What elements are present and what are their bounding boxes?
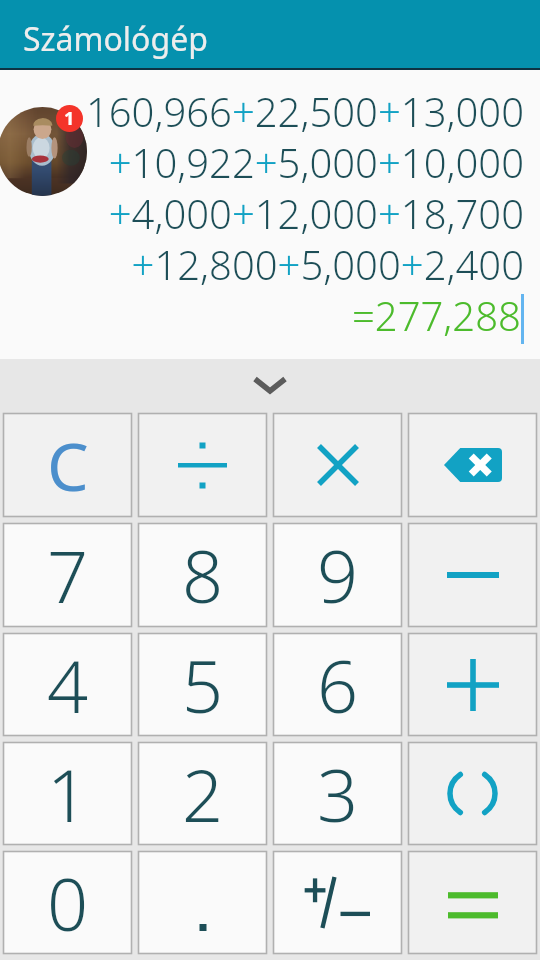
other: 6: [317, 636, 359, 734]
staticText: 8: [182, 526, 224, 624]
other: Minus: [447, 570, 499, 580]
staticText: +4,000+12,000+18,700: [108, 186, 524, 237]
other: Plus: [447, 659, 499, 711]
staticText: 1: [64, 106, 75, 131]
button[interactable]: Multiply: [273, 413, 402, 517]
staticText: 1: [47, 745, 89, 843]
button[interactable]: 1 notification: [56, 105, 83, 132]
staticText: C: [47, 420, 89, 510]
button[interactable]: Decimal point: [138, 851, 267, 954]
staticText: 2: [182, 745, 224, 843]
staticText: +10,922+5,000+10,000: [108, 135, 524, 186]
button[interactable]: Profile photo: [0, 107, 87, 196]
other: Divide: [178, 441, 227, 489]
other: 5: [182, 636, 224, 734]
staticText: =277,288: [352, 288, 521, 339]
other: Clear: [47, 420, 89, 510]
other: Multiply: [317, 444, 359, 486]
button[interactable]: 9: [273, 523, 402, 627]
staticText: 0: [47, 854, 89, 952]
staticText: +12,800+5,000+2,400: [131, 237, 524, 288]
button[interactable]: 7: [3, 523, 132, 627]
button[interactable]: 4: [3, 633, 132, 736]
button[interactable]: 6: [273, 633, 402, 736]
staticText: 6: [317, 636, 359, 734]
button[interactable]: Minus: [408, 523, 537, 627]
other: 8: [182, 526, 224, 624]
button[interactable]: 2: [138, 742, 267, 845]
button[interactable]: 1: [3, 742, 132, 845]
other: Equals: [448, 874, 498, 932]
button[interactable]: 8: [138, 523, 267, 627]
button[interactable]: 3: [273, 742, 402, 845]
other: Plus minus sign: [304, 876, 371, 929]
staticText: 9: [317, 526, 359, 624]
button[interactable]: Equals: [408, 851, 537, 954]
other: 1: [47, 745, 89, 843]
button[interactable]: Collapse display: [0, 359, 540, 410]
staticText: 7: [47, 526, 89, 624]
other: 0: [47, 854, 89, 952]
button[interactable]: Parentheses: [408, 742, 537, 845]
button[interactable]: Clear: [3, 413, 132, 517]
other: 2: [182, 745, 224, 843]
button[interactable]: Divide: [138, 413, 267, 517]
other: 9: [317, 526, 359, 624]
button[interactable]: Backspace: [408, 413, 537, 517]
other: Backspace: [444, 448, 502, 482]
staticText: 3: [317, 745, 359, 843]
button[interactable]: 5: [138, 633, 267, 736]
staticText: Számológép: [23, 17, 208, 61]
other: Decimal point: [193, 874, 213, 931]
button[interactable]: Plus minus sign: [273, 851, 402, 954]
other: Parentheses: [446, 772, 499, 815]
staticText: 160,966+22,500+13,000: [85, 84, 524, 135]
button[interactable]: Számológép: [0, 0, 540, 68]
button[interactable]: Plus: [408, 633, 537, 736]
staticText: 4: [47, 636, 89, 734]
staticText: 5: [182, 636, 224, 734]
other: 7: [47, 526, 89, 624]
other: 3: [317, 745, 359, 843]
other: 4: [47, 636, 89, 734]
button[interactable]: 0: [3, 851, 132, 954]
